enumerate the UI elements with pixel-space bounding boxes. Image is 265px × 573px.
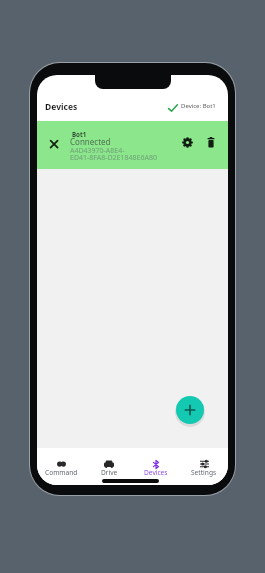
staticText: ED41-8FA8-D2E1848E6A80 <box>70 153 157 163</box>
button[interactable]: Settings <box>184 456 224 484</box>
button[interactable] <box>46 136 62 152</box>
staticText: Connected <box>70 136 111 147</box>
staticText: Settings <box>191 468 217 477</box>
staticText: Device: Bot1 <box>181 102 216 110</box>
button[interactable]: Devices <box>136 456 176 484</box>
button[interactable] <box>204 135 218 149</box>
button[interactable] <box>180 135 195 150</box>
staticText: Bot1 <box>72 130 87 138</box>
staticText: Drive <box>101 468 118 477</box>
staticText: Command <box>45 468 78 477</box>
button[interactable]: Bot1 <box>37 121 228 169</box>
staticText: Devices <box>144 468 168 477</box>
staticText: Devices <box>45 101 78 113</box>
button[interactable]: Command <box>41 456 81 484</box>
button[interactable] <box>176 396 204 424</box>
staticText: A4D43970-A8E4- <box>70 146 125 156</box>
button[interactable]: Drive <box>89 456 129 484</box>
